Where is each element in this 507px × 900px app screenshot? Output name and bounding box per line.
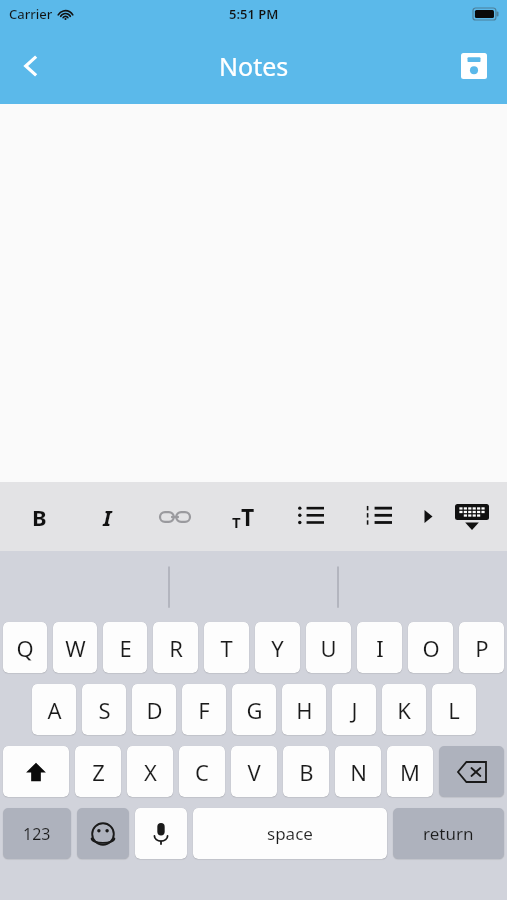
button[interactable]: Back xyxy=(4,39,58,93)
button[interactable]: T xyxy=(204,622,249,673)
button[interactable]: Y xyxy=(255,622,300,673)
button[interactable]: M xyxy=(387,746,433,797)
staticText: T xyxy=(232,512,241,532)
staticText: L xyxy=(448,695,460,725)
button[interactable]: O xyxy=(408,622,453,673)
staticText: C xyxy=(195,757,209,787)
button[interactable]: I xyxy=(357,622,402,673)
staticText: X xyxy=(144,757,157,787)
staticText: D xyxy=(146,695,163,725)
button[interactable]: U xyxy=(306,622,351,673)
staticText: A xyxy=(47,695,62,725)
staticText: P xyxy=(475,633,489,663)
staticText: J xyxy=(351,695,358,725)
button[interactable]: G xyxy=(232,684,276,735)
button[interactable]: X xyxy=(127,746,173,797)
button[interactable]: More xyxy=(413,482,443,551)
staticText: T xyxy=(241,501,255,532)
staticText: S xyxy=(98,695,111,725)
button[interactable]: F xyxy=(182,684,226,735)
button[interactable]: N xyxy=(335,746,381,797)
button[interactable]: Dictation xyxy=(135,808,187,859)
button[interactable]: return xyxy=(393,808,504,859)
button[interactable]: Q xyxy=(3,622,47,673)
staticText: return xyxy=(423,822,474,845)
staticText: Y xyxy=(271,633,284,663)
staticText: space xyxy=(267,822,313,845)
staticText: I xyxy=(376,633,384,663)
staticText: Carrier xyxy=(9,5,53,23)
staticText: F xyxy=(198,695,210,725)
button[interactable]: Bulleted list xyxy=(277,482,345,551)
button[interactable]: 123 xyxy=(3,808,71,859)
staticText: M xyxy=(400,757,420,787)
button[interactable]: Emoji xyxy=(77,808,129,859)
button[interactable]: S xyxy=(82,684,126,735)
staticText: N xyxy=(350,757,367,787)
button[interactable]: Shift xyxy=(3,746,69,797)
staticText: G xyxy=(246,695,263,725)
button[interactable]: Backspace xyxy=(439,746,504,797)
button[interactable]: Italic xyxy=(73,482,141,551)
button[interactable]: C xyxy=(179,746,225,797)
staticText: Z xyxy=(92,757,105,787)
staticText: R xyxy=(169,633,183,663)
button[interactable]: Bold xyxy=(6,482,73,551)
staticText: K xyxy=(397,695,411,725)
button[interactable]: D xyxy=(132,684,176,735)
button[interactable]: Numbered list xyxy=(345,482,413,551)
staticText: B xyxy=(299,757,314,787)
button[interactable]: Z xyxy=(75,746,121,797)
button[interactable]: R xyxy=(153,622,198,673)
staticText: O xyxy=(422,633,440,663)
button[interactable]: K xyxy=(382,684,426,735)
staticText: I xyxy=(103,502,112,532)
staticText: W xyxy=(65,633,86,663)
button[interactable]: W xyxy=(53,622,97,673)
staticText: U xyxy=(320,633,337,663)
staticText: Q xyxy=(16,633,34,663)
button[interactable]: B xyxy=(283,746,329,797)
staticText: E xyxy=(119,633,132,663)
staticText: H xyxy=(296,695,313,725)
button[interactable]: H xyxy=(282,684,326,735)
button[interactable]: J xyxy=(332,684,376,735)
button[interactable]: L xyxy=(432,684,476,735)
button[interactable]: V xyxy=(231,746,277,797)
button[interactable]: P xyxy=(459,622,504,673)
button[interactable]: A xyxy=(32,684,76,735)
button[interactable]: Link xyxy=(141,482,209,551)
button[interactable]: Hide keyboard xyxy=(443,482,501,551)
button[interactable]: Text size xyxy=(209,482,277,551)
staticText: T xyxy=(220,633,233,663)
button[interactable]: E xyxy=(103,622,147,673)
button[interactable]: space xyxy=(193,808,387,859)
staticText: Notes xyxy=(219,49,289,83)
staticText: B xyxy=(32,502,47,532)
staticText: 123 xyxy=(23,823,51,845)
staticText: V xyxy=(247,757,261,787)
button[interactable]: Save xyxy=(447,39,501,93)
staticText: 5:51 PM xyxy=(229,5,279,23)
